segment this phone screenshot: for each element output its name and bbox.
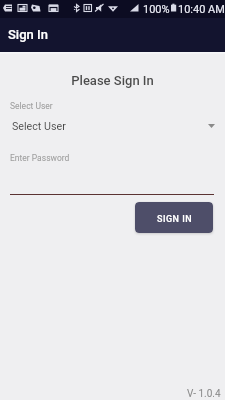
staticText: Enter Password xyxy=(10,153,70,163)
staticText: V- 1.0.4 xyxy=(187,388,221,400)
staticText: 100% xyxy=(143,3,170,16)
staticText: SIGN IN xyxy=(157,214,193,225)
button[interactable]: SIGN IN xyxy=(135,202,213,233)
staticText: 10:40 AM xyxy=(178,3,225,16)
button[interactable]: Select User xyxy=(0,116,225,136)
staticText: Sign In xyxy=(8,27,48,42)
staticText: Please Sign In xyxy=(0,73,225,88)
staticText: Select User xyxy=(12,120,66,133)
staticText: Select User xyxy=(10,101,53,111)
